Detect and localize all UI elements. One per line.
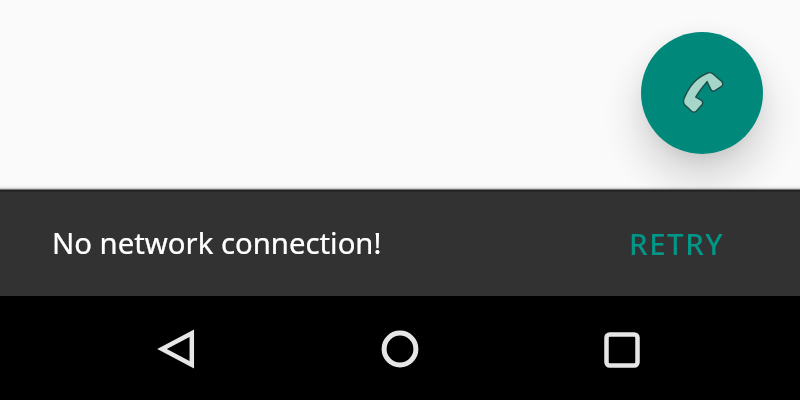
staticText: RETRY	[629, 223, 725, 263]
button[interactable]: RETRY	[605, 207, 800, 279]
button[interactable]: Call	[641, 32, 763, 154]
button[interactable]: Back	[133, 305, 221, 393]
button[interactable]: Home	[356, 305, 444, 393]
button[interactable]: Recent apps	[578, 306, 666, 394]
staticText: No network connection!	[52, 223, 382, 263]
